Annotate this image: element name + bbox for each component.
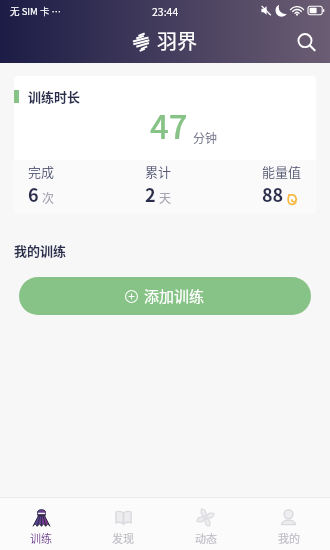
staticText: 无 SIM 卡 ⋯ [10,4,62,18]
staticText: 次 [42,189,55,206]
staticText: 能量值 [262,162,302,181]
staticText: 分钟 [193,129,218,146]
staticText: 添加训练 [144,285,205,307]
staticText: 累计 [145,162,172,181]
staticText: 47 [150,101,188,149]
button[interactable]: 动态 [164,498,247,550]
staticText: 发现 [112,530,134,546]
staticText: 完成 [28,162,55,181]
staticText: 天 [159,189,172,206]
button[interactable]: 发现 [82,498,164,550]
staticText: 训练时长 [28,87,81,106]
button[interactable]: 添加训练 [19,277,311,315]
button[interactable]: 我的 [247,498,330,550]
staticText: 训练 [30,530,52,546]
staticText: 动态 [195,530,217,546]
staticText: 羽界 [157,26,197,55]
button[interactable]: 训练 [0,498,82,550]
button[interactable]: Search [293,29,319,55]
staticText: 2 [145,181,156,207]
staticText: 我的 [278,530,300,546]
staticText: 23:44 [152,4,179,19]
staticText: 6 [28,181,39,207]
staticText: 88 [262,181,284,207]
staticText: 我的训练 [14,241,67,260]
